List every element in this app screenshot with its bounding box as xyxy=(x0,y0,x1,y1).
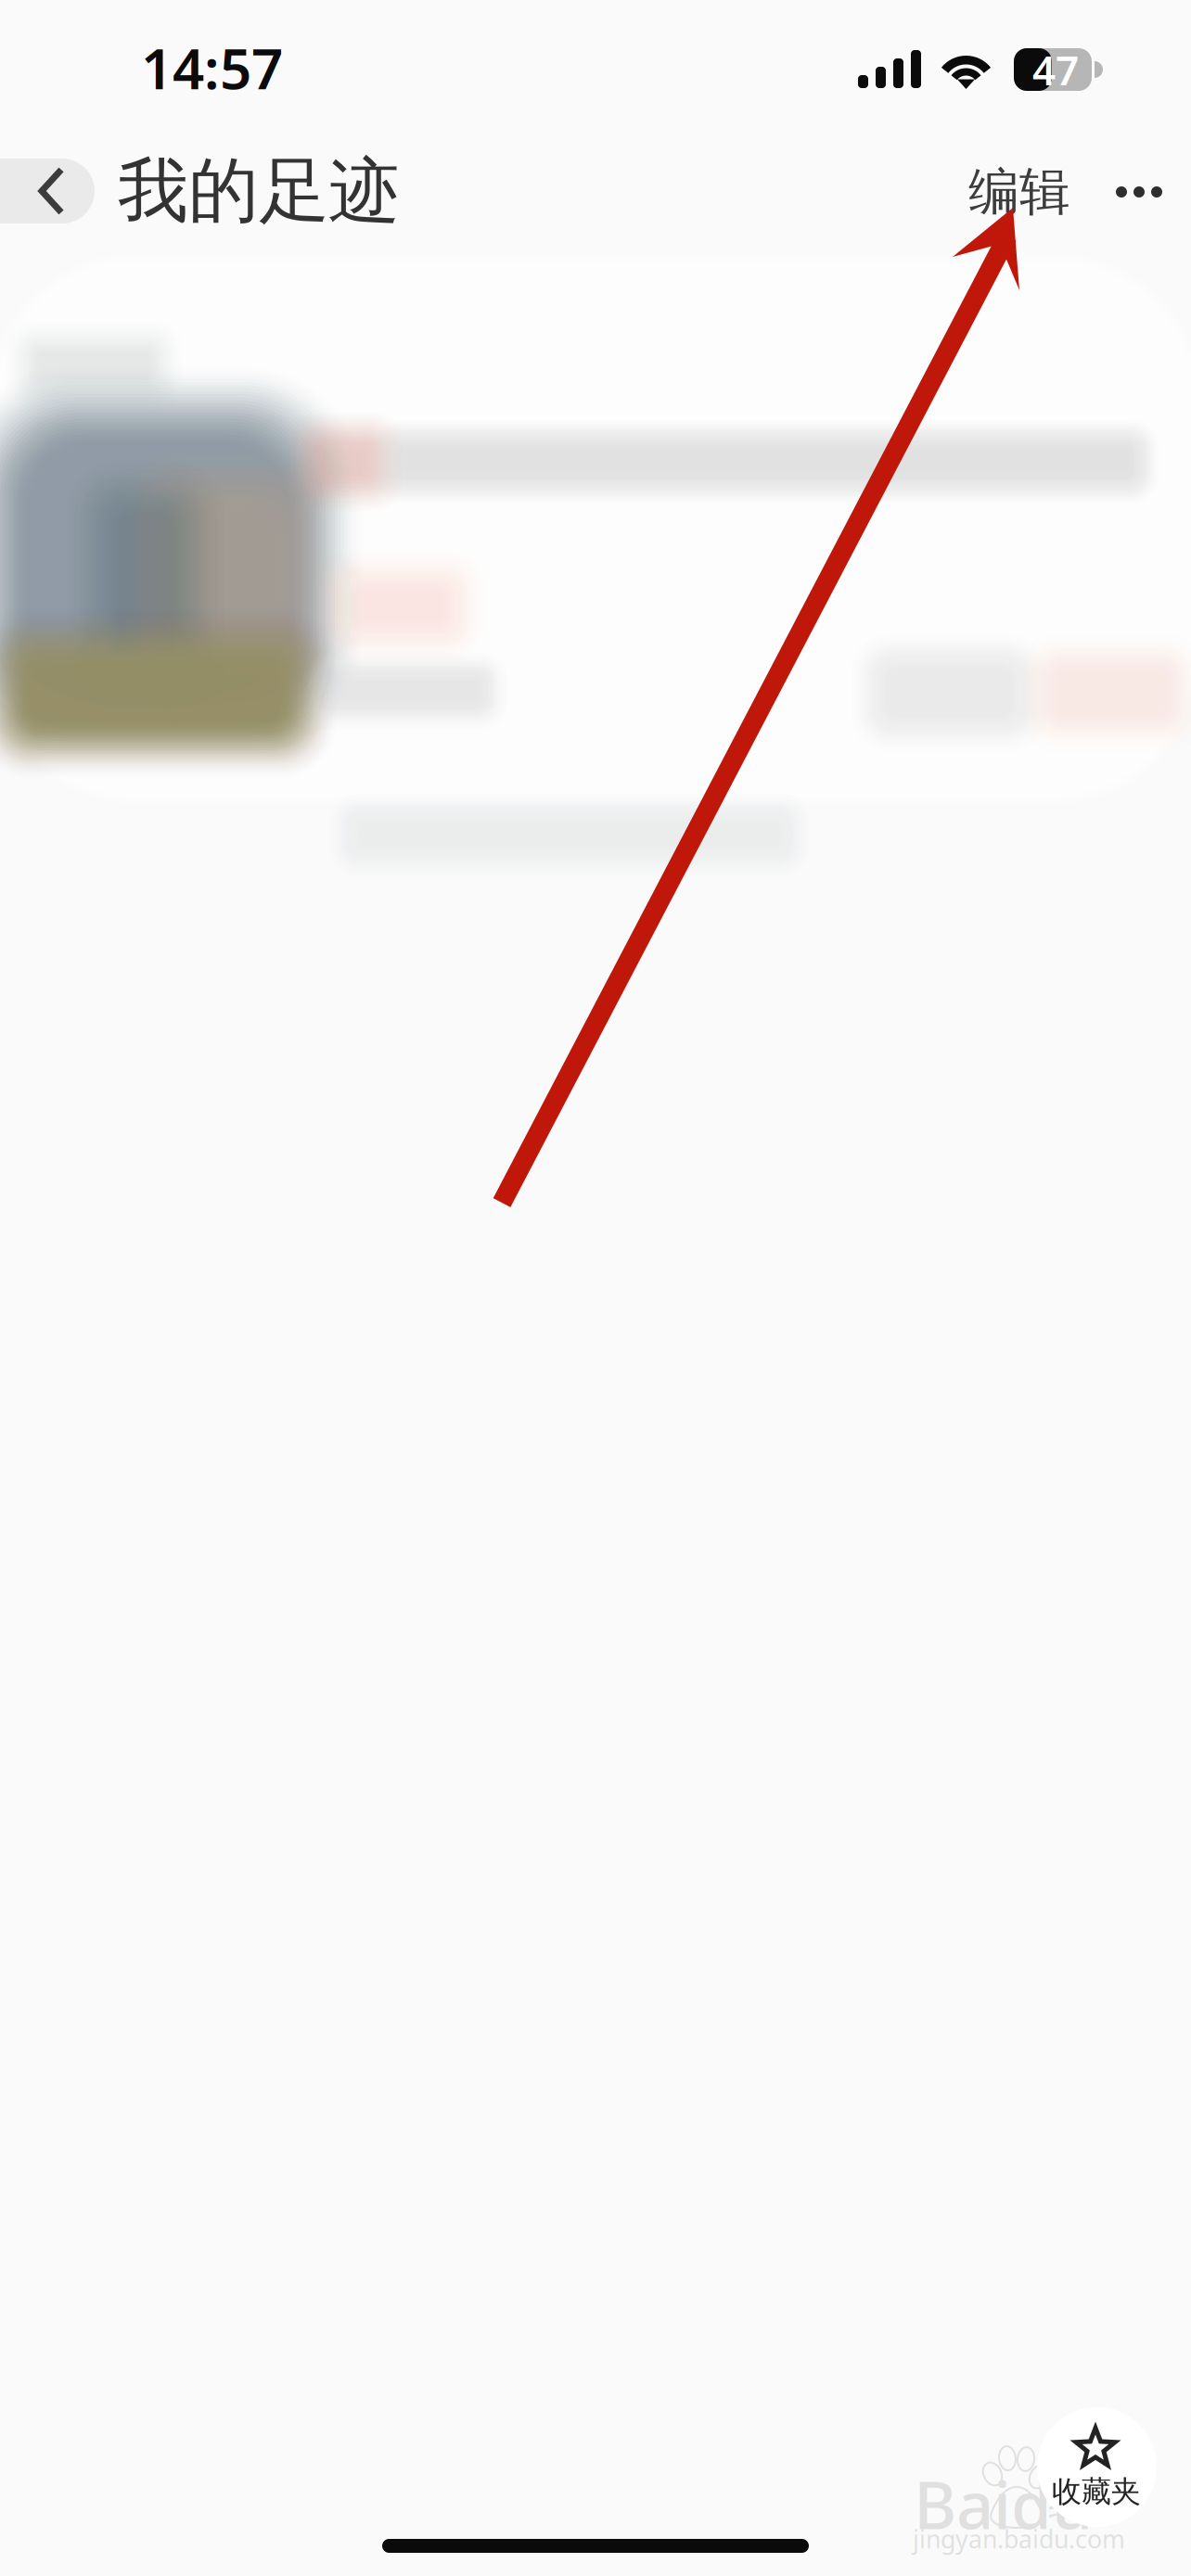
staticText: 收藏夹 xyxy=(1052,2473,1141,2510)
button[interactable]: 编辑 xyxy=(0,0,1191,2576)
staticText: 47 xyxy=(1032,42,1079,97)
staticText: Baidu xyxy=(914,2460,1093,2547)
button[interactable]: More xyxy=(1101,152,1177,232)
button[interactable]: Favorites xyxy=(1037,2407,1157,2527)
staticText: 我的足迹 xyxy=(118,148,400,234)
staticText: 经验 xyxy=(1048,2480,1124,2527)
staticText: 14:57 xyxy=(141,31,283,105)
staticText: jingyan.baidu.com xyxy=(913,2522,1125,2555)
button[interactable]: Back xyxy=(0,159,95,223)
staticText: 编辑 xyxy=(968,161,1070,223)
